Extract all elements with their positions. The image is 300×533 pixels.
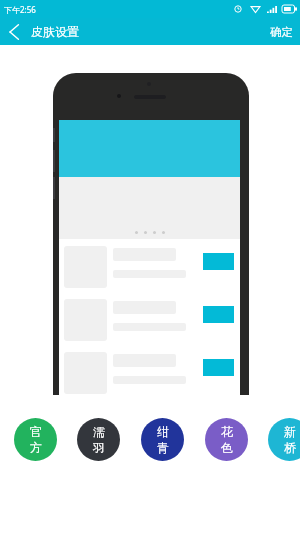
staticText: 下午2:56 <box>4 4 36 15</box>
button[interactable]: 确定 <box>263 18 300 45</box>
button[interactable]: Back <box>0 18 27 45</box>
staticText: 花 <box>221 424 233 439</box>
button[interactable]: 花 <box>205 418 248 461</box>
staticText: 官 <box>30 424 42 439</box>
button[interactable]: 濡 <box>77 418 120 461</box>
staticText: 方 <box>30 440 42 455</box>
button[interactable]: 官 <box>14 418 57 461</box>
staticText: 羽 <box>93 440 105 455</box>
staticText: 新 <box>284 424 296 439</box>
button[interactable]: 新 <box>268 418 300 461</box>
staticText: 桥 <box>284 440 296 455</box>
staticText: 色 <box>221 440 233 455</box>
staticText: 濡 <box>93 424 105 439</box>
staticText: 确定 <box>270 25 293 39</box>
button[interactable]: 绀 <box>141 418 184 461</box>
staticText: 皮肤设置 <box>31 24 79 39</box>
staticText: 绀 <box>157 424 169 439</box>
staticText: 青 <box>157 440 169 455</box>
